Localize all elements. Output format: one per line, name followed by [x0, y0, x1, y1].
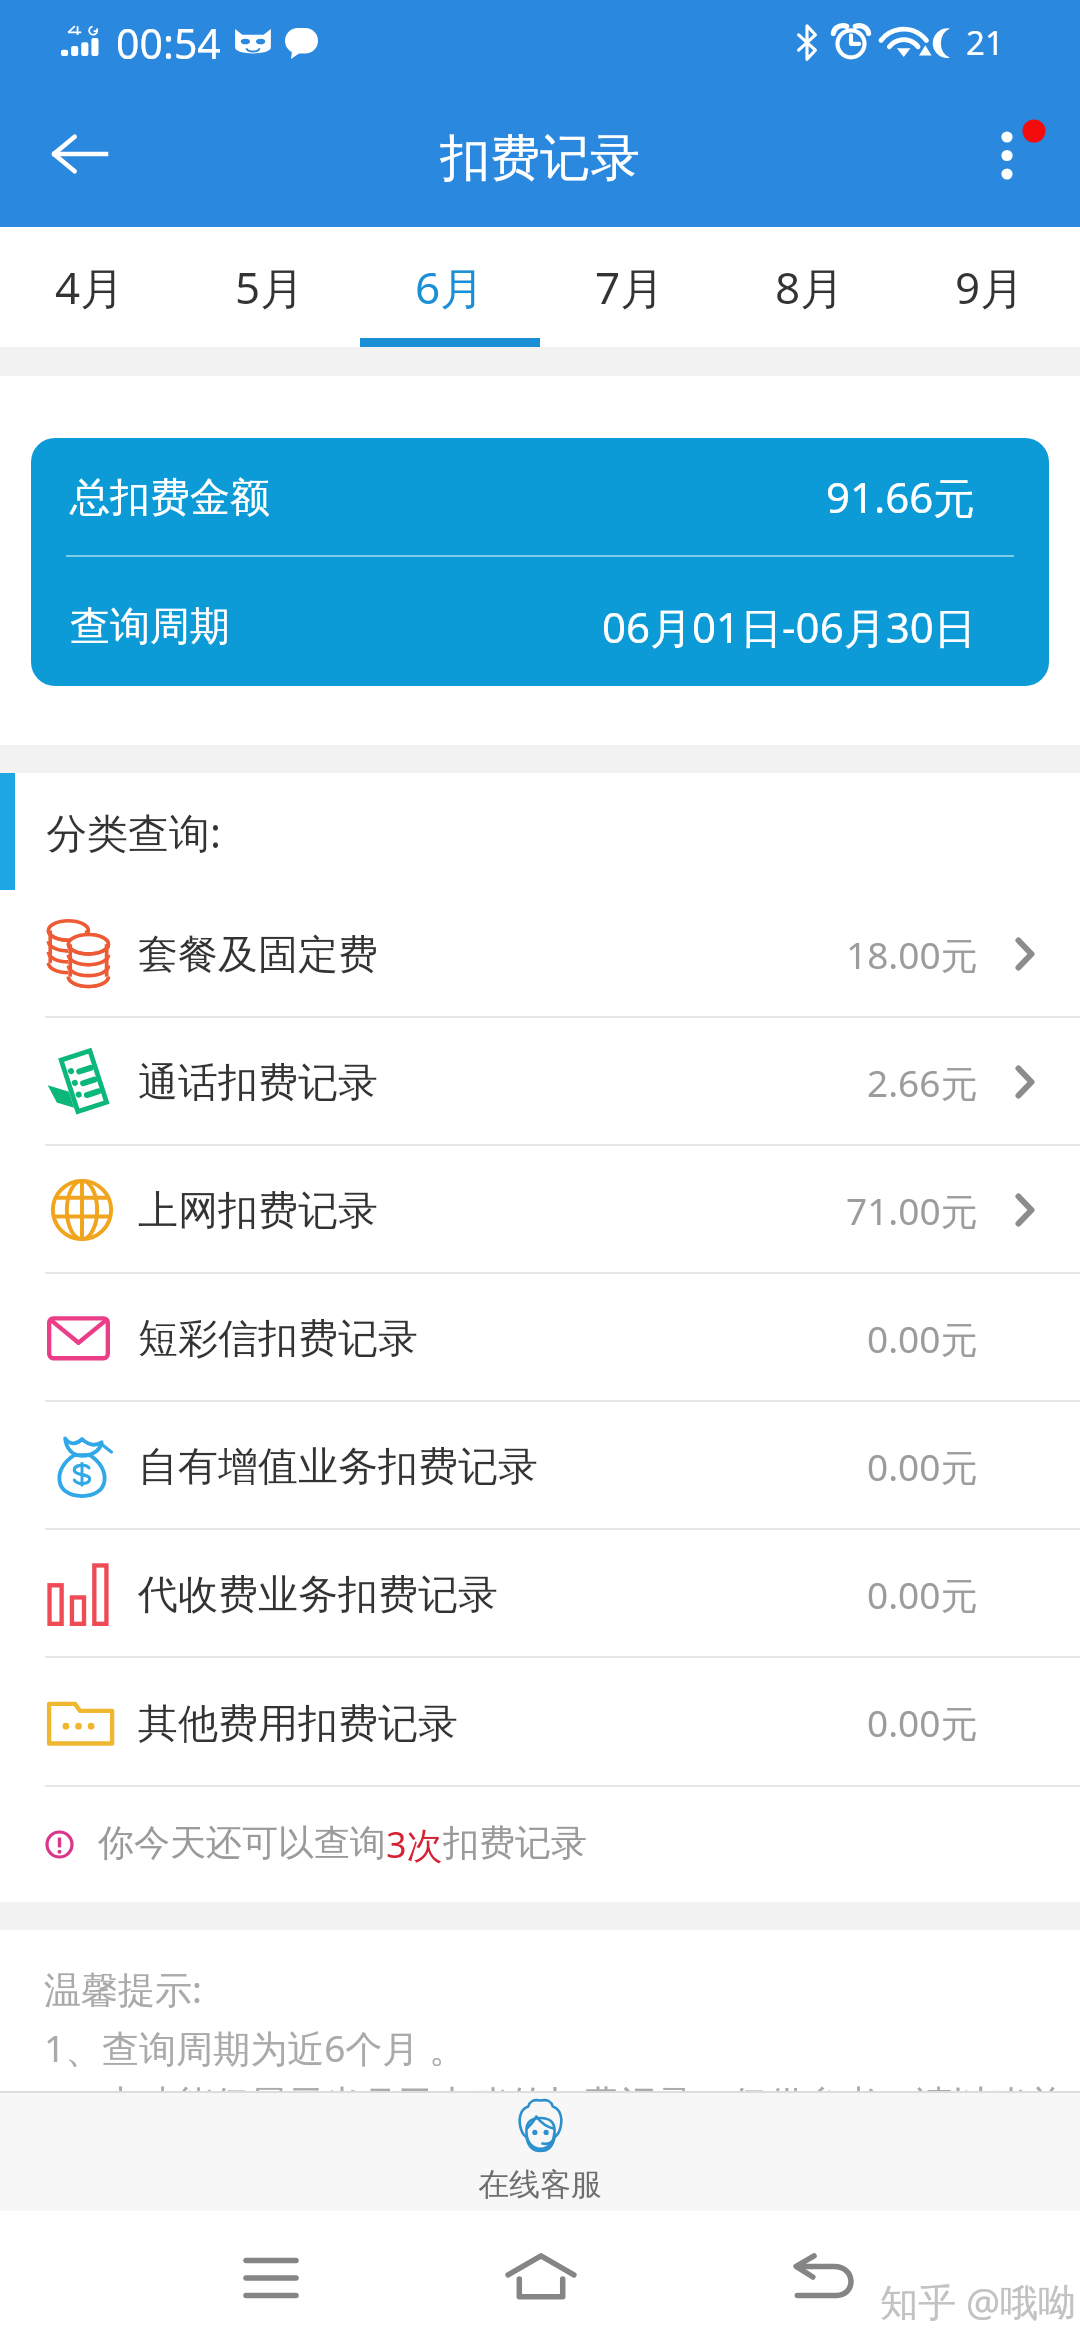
staticText: 通话扣费记录	[138, 1057, 378, 1107]
staticText: 5月	[235, 257, 305, 317]
staticText: 知乎 @哦呦	[880, 2275, 1077, 2327]
button[interactable]: 自有增值业务扣费记录	[0, 1402, 1080, 1530]
staticText: 查询周期	[70, 601, 230, 651]
staticText: 06月01日-06月30日	[602, 598, 976, 655]
staticText: 扣费记录	[440, 127, 640, 190]
button[interactable]: 其他费用扣费记录	[0, 1658, 1080, 1787]
button[interactable]: 套餐及固定费	[0, 890, 1080, 1018]
button[interactable]: 主页	[506, 2255, 576, 2298]
button[interactable]: 9月	[900, 227, 1080, 347]
staticText: 6月	[415, 257, 485, 317]
staticText: 9月	[955, 257, 1025, 317]
staticText: 你今天还可以查询	[98, 1820, 386, 1865]
button[interactable]: 5月	[180, 227, 360, 347]
button[interactable]: 短彩信扣费记录	[0, 1274, 1080, 1402]
staticText: 温馨提示:	[44, 1963, 202, 2014]
button[interactable]: 上网扣费记录	[0, 1146, 1080, 1274]
button[interactable]: 最近任务	[246, 2259, 296, 2297]
staticText: 0.00元	[867, 1697, 978, 1748]
button[interactable]: 通话扣费记录	[0, 1018, 1080, 1146]
button[interactable]: 返回	[793, 2255, 855, 2299]
button[interactable]: 6月	[360, 227, 540, 347]
staticText: 4月	[55, 257, 125, 317]
staticText: 自有增值业务扣费记录	[138, 1441, 538, 1491]
staticText: 0.00元	[867, 1441, 978, 1492]
staticText: 扣费记录	[443, 1820, 587, 1865]
button[interactable]: 总扣费金额	[31, 438, 1049, 686]
button[interactable]: 更多选项	[960, 100, 1060, 227]
button[interactable]: 8月	[720, 227, 900, 347]
staticText: 在线客服	[478, 2165, 602, 2204]
staticText: 3次	[386, 1820, 443, 1869]
staticText: 套餐及固定费	[138, 929, 378, 979]
staticText: 18.00元	[846, 929, 978, 980]
staticText: 0.00元	[867, 1569, 978, 1620]
staticText: 其他费用扣费记录	[138, 1698, 458, 1748]
staticText: 91.66元	[826, 468, 976, 525]
staticText: 代收费业务扣费记录	[138, 1569, 498, 1619]
staticText: 总扣费金额	[70, 472, 270, 522]
staticText: 2.66元	[867, 1057, 978, 1108]
button[interactable]: 代收费业务扣费记录	[0, 1530, 1080, 1658]
staticText: 71.00元	[846, 1185, 978, 1236]
staticText: 短彩信扣费记录	[138, 1313, 418, 1363]
staticText: 8月	[775, 257, 845, 317]
staticText: 0.00元	[867, 1313, 978, 1364]
button[interactable]: 7月	[540, 227, 720, 347]
staticText: 00:54	[116, 15, 221, 71]
button[interactable]: 返回	[22, 100, 138, 227]
staticText: 2、本功能仅展示当月已出账的扣费记录，仅供参考，请以账单为准。	[44, 2077, 1080, 2177]
staticText: 1、查询周期为近6个月 。	[44, 2022, 466, 2073]
staticText: 21	[966, 20, 1004, 65]
button[interactable]: 4月	[0, 227, 180, 347]
staticText: 7月	[595, 257, 665, 317]
staticText: 上网扣费记录	[138, 1185, 378, 1235]
button[interactable]: 在线客服	[0, 2091, 1080, 2211]
staticText: 分类查询:	[46, 804, 221, 860]
